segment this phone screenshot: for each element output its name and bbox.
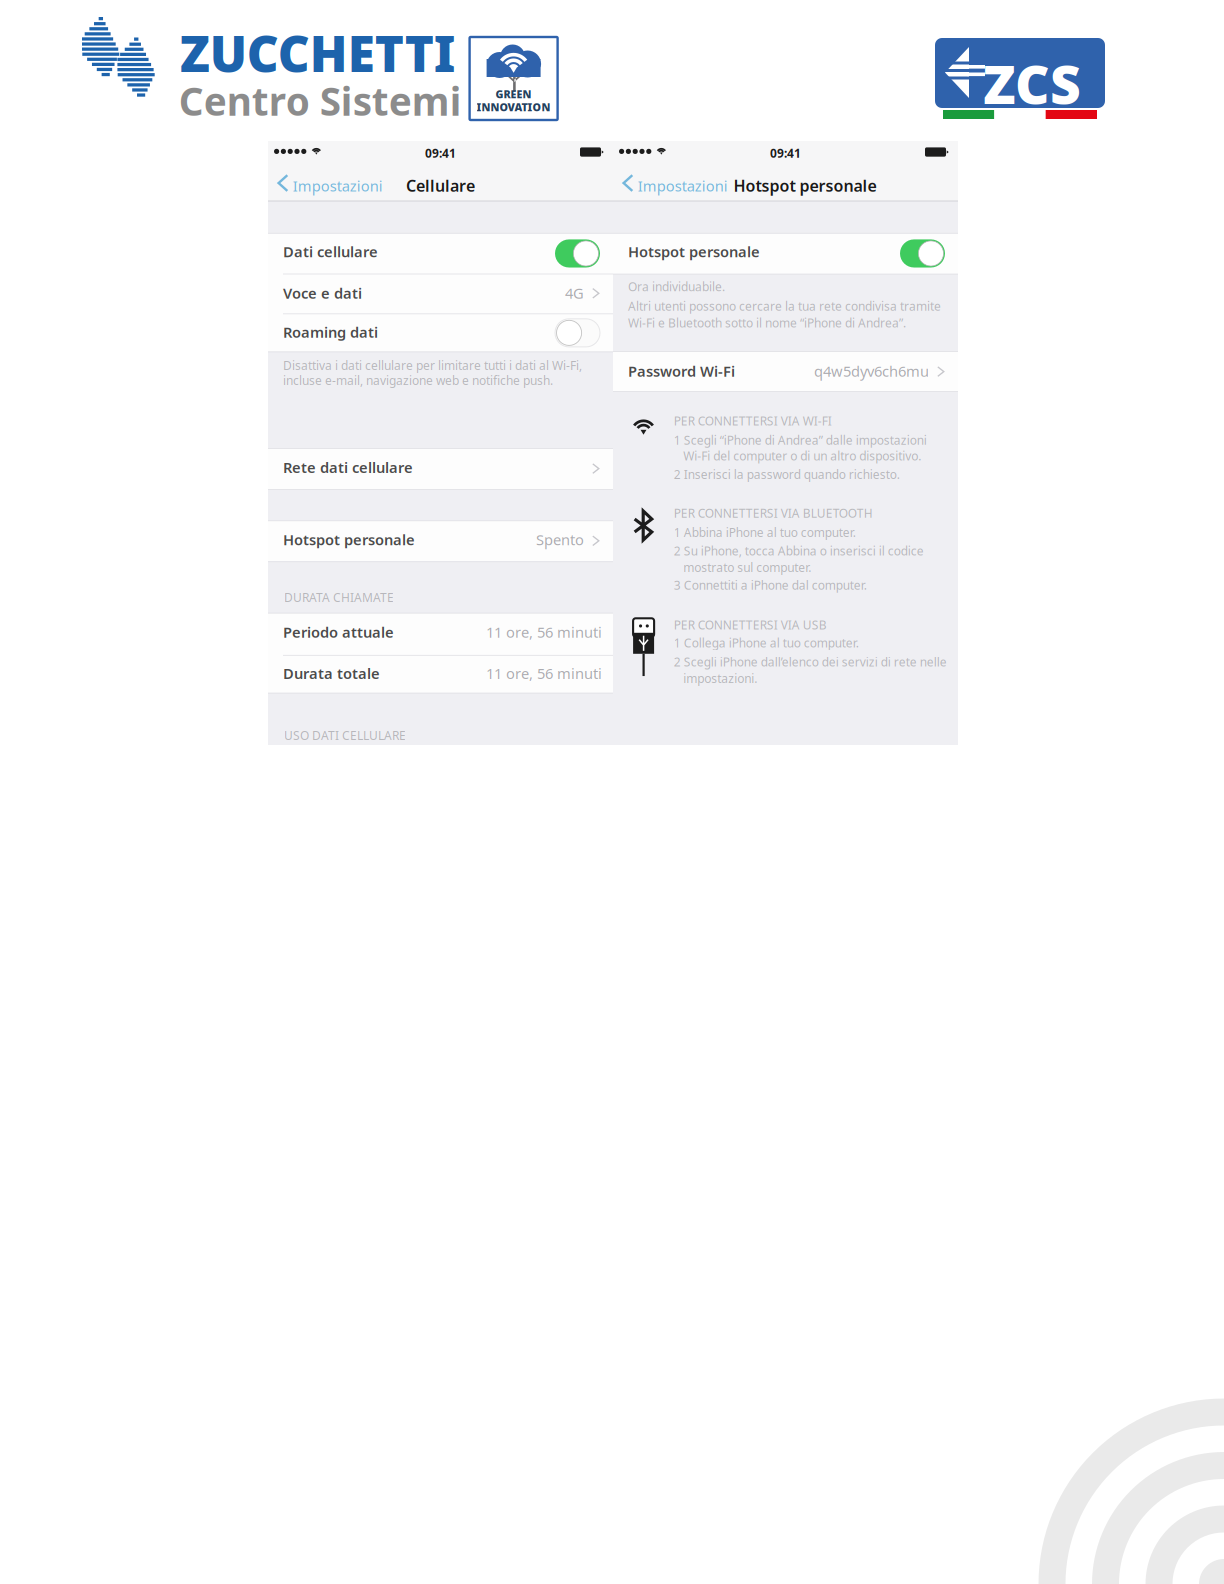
staticText: Spento — [536, 530, 584, 549]
staticText: Dati cellulare — [283, 242, 378, 261]
staticText: 2 Scegli iPhone dall’elenco dei servizi … — [674, 654, 947, 670]
staticText: q4w5dyv6ch6mu — [814, 361, 929, 381]
staticText: USO DATI CELLULARE — [284, 727, 406, 743]
staticText: Periodo attuale — [283, 622, 394, 642]
staticText: Hotspot personale — [283, 530, 415, 549]
staticText: Durata totale — [283, 663, 380, 683]
staticText: 1 Scegli “iPhone di Andrea” dalle impost… — [674, 432, 927, 448]
staticText: 1 Abbina iPhone al tuo computer. — [674, 524, 856, 540]
button[interactable]: Roaming dati — [268, 313, 613, 351]
staticText: PER CONNETTERSI VIA BLUETOOTH — [674, 505, 873, 521]
staticText: Wi-Fi e Bluetooth sotto il nome “iPhone … — [628, 315, 906, 331]
staticText: DURATA CHIAMATE — [284, 589, 394, 605]
staticText: 2 Inserisci la password quando richiesto… — [674, 466, 900, 482]
staticText: 11 ore, 56 minuti — [486, 622, 602, 642]
button[interactable]: Rete dati cellulare — [268, 449, 613, 489]
staticText: Roaming dati — [283, 322, 378, 342]
staticText: incluse e-mail, navigazione web e notifi… — [283, 372, 553, 388]
button[interactable]: Password Wi-Fi — [613, 351, 958, 391]
staticText: 09:41 — [770, 145, 801, 161]
staticText: Hotspot personale — [628, 242, 760, 261]
staticText: Impostazioni — [293, 176, 383, 195]
button[interactable]: Voce e dati — [268, 273, 613, 313]
staticText: 1 Collega iPhone al tuo computer. — [674, 635, 859, 651]
staticText: INNOVATION — [477, 100, 551, 114]
staticText: Impostazioni — [638, 176, 728, 195]
staticText: Disattiva i dati cellulare per limitare … — [283, 357, 582, 373]
staticText: 11 ore, 56 minuti — [486, 663, 602, 683]
staticText: 09:41 — [425, 145, 456, 161]
staticText: Centro Sistemi — [179, 75, 462, 126]
staticText: Cellulare — [406, 175, 475, 196]
staticText: PER CONNETTERSI VIA USB — [674, 617, 827, 633]
staticText: PER CONNETTERSI VIA WI-FI — [674, 413, 832, 429]
staticText: 2 Su iPhone, tocca Abbina o inserisci il… — [674, 543, 924, 559]
staticText: Voce e dati — [283, 283, 362, 303]
button[interactable]: Impostazioni — [268, 166, 388, 200]
staticText: 4G — [565, 283, 584, 303]
staticText: ZCS — [983, 48, 1081, 119]
staticText: ZUCCHETTI — [180, 20, 456, 85]
staticText: Password Wi-Fi — [628, 361, 735, 381]
button[interactable]: Impostazioni — [613, 166, 733, 200]
staticText: 3 Connettiti a iPhone dal computer. — [674, 577, 867, 593]
staticText: Rete dati cellulare — [283, 458, 413, 477]
staticText: Ora individuabile. — [628, 279, 725, 295]
staticText: mostrato sul computer. — [683, 559, 811, 575]
button[interactable]: Hotspot personale — [613, 233, 958, 274]
staticText: impostazioni. — [683, 670, 757, 686]
staticText: Altri utenti possono cercare la tua rete… — [628, 298, 941, 314]
button[interactable]: Hotspot personale — [268, 521, 613, 561]
staticText: GREEN — [496, 87, 532, 101]
staticText: Hotspot personale — [734, 175, 877, 196]
button[interactable]: Dati cellulare — [268, 233, 613, 273]
staticText: Wi-Fi del computer o di un altro disposi… — [683, 448, 921, 464]
